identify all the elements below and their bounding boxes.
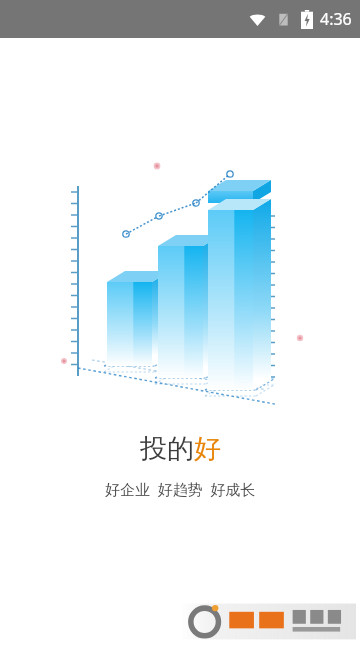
staticText: 4:36 xyxy=(320,8,352,30)
button[interactable]: 西西软件园 watermark xyxy=(180,598,356,644)
staticText: 好企业 好趋势 好成长 xyxy=(105,479,256,499)
staticText: 投的好 xyxy=(140,432,221,466)
